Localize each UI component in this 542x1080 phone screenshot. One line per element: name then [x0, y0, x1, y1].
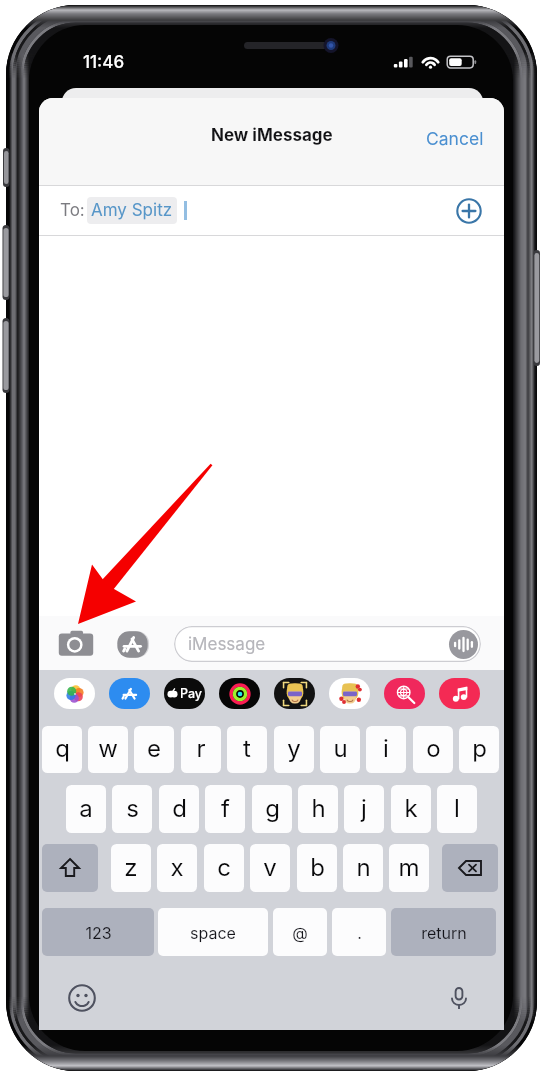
button[interactable]: a — [66, 785, 106, 833]
button[interactable]: b — [297, 844, 337, 892]
staticText: c — [217, 853, 231, 882]
staticText: n — [356, 853, 371, 882]
button[interactable]: Backspace — [442, 844, 498, 892]
button[interactable]: Fitness — [219, 678, 260, 709]
staticText: e — [147, 734, 161, 763]
staticText: New iMessage — [211, 125, 333, 146]
staticText: s — [126, 794, 139, 823]
button[interactable]: return — [391, 908, 496, 956]
button[interactable]: l — [437, 785, 477, 833]
staticText: g — [265, 794, 280, 823]
staticText: a — [79, 794, 93, 823]
button[interactable]: c — [204, 844, 244, 892]
button[interactable]: x — [157, 844, 197, 892]
button[interactable]: m — [389, 844, 429, 892]
staticText: i — [383, 734, 389, 763]
staticText: space — [190, 923, 236, 942]
button[interactable]: p — [459, 726, 499, 773]
button[interactable]: Shift — [42, 844, 98, 892]
button[interactable]: j — [344, 785, 384, 833]
staticText: Amy Spitz — [91, 200, 173, 221]
staticText: d — [172, 794, 187, 823]
staticText: l — [454, 794, 460, 823]
button[interactable]: iMessage — [174, 626, 481, 662]
staticText: z — [124, 853, 138, 882]
staticText: Pay — [180, 686, 203, 701]
staticText: Cancel — [426, 128, 484, 149]
staticText: t — [243, 734, 251, 763]
staticText: @ — [292, 923, 308, 942]
staticText: . — [357, 923, 362, 942]
button[interactable]: r — [181, 726, 221, 773]
button[interactable]: Memoji Stickers — [329, 678, 370, 709]
button[interactable]: Cancel — [414, 120, 496, 157]
staticText: w — [98, 734, 118, 763]
button[interactable]: o — [413, 726, 453, 773]
button[interactable]: Add contact — [451, 193, 487, 229]
button[interactable]: App Store — [109, 678, 150, 709]
staticText: p — [472, 734, 487, 763]
staticText: h — [311, 794, 326, 823]
button[interactable]: w — [88, 726, 128, 773]
button[interactable]: Camera — [56, 624, 96, 664]
staticText: 11:46 — [83, 52, 125, 73]
button[interactable]: k — [391, 785, 431, 833]
button[interactable]: Dictation — [442, 981, 476, 1015]
button[interactable]: Memoji — [274, 678, 315, 709]
button[interactable]: Emoji — [65, 981, 99, 1015]
staticText: 123 — [85, 923, 112, 942]
button[interactable]: n — [343, 844, 383, 892]
staticText: iMessage — [188, 634, 266, 655]
staticText: y — [287, 734, 301, 763]
button[interactable]: v — [250, 844, 290, 892]
staticText: To: — [60, 200, 85, 221]
button[interactable]: . — [332, 908, 386, 956]
button[interactable]: s — [112, 785, 152, 833]
staticText: return — [421, 923, 467, 942]
button[interactable]: App Store — [112, 624, 152, 664]
staticText: v — [263, 853, 277, 882]
staticText: b — [310, 853, 325, 882]
button[interactable]: q — [42, 726, 82, 773]
button[interactable]: h — [298, 785, 338, 833]
button[interactable]: @ — [273, 908, 327, 956]
button[interactable]: t — [227, 726, 267, 773]
staticText: r — [196, 734, 206, 763]
button[interactable]: y — [274, 726, 314, 773]
staticText: x — [170, 853, 184, 882]
button[interactable]: d — [159, 785, 199, 833]
button[interactable]: Images — [384, 678, 425, 709]
staticText: o — [426, 734, 441, 763]
staticText: m — [398, 853, 420, 882]
button[interactable]: f — [205, 785, 245, 833]
button[interactable]: 123 — [42, 908, 154, 956]
staticText: k — [404, 794, 418, 823]
button[interactable]: u — [320, 726, 360, 773]
staticText: f — [221, 794, 230, 823]
button[interactable]: z — [111, 844, 151, 892]
button[interactable]: Music — [439, 678, 480, 709]
staticText: q — [55, 734, 70, 763]
button[interactable]: g — [252, 785, 292, 833]
button[interactable]: space — [158, 908, 268, 956]
button[interactable]: Photos — [54, 678, 95, 709]
button[interactable]: Apple Pay — [164, 678, 205, 709]
button[interactable]: e — [134, 726, 174, 773]
staticText: u — [333, 734, 348, 763]
button[interactable]: i — [366, 726, 406, 773]
button[interactable]: Audio message — [448, 629, 478, 659]
staticText: j — [361, 794, 367, 823]
